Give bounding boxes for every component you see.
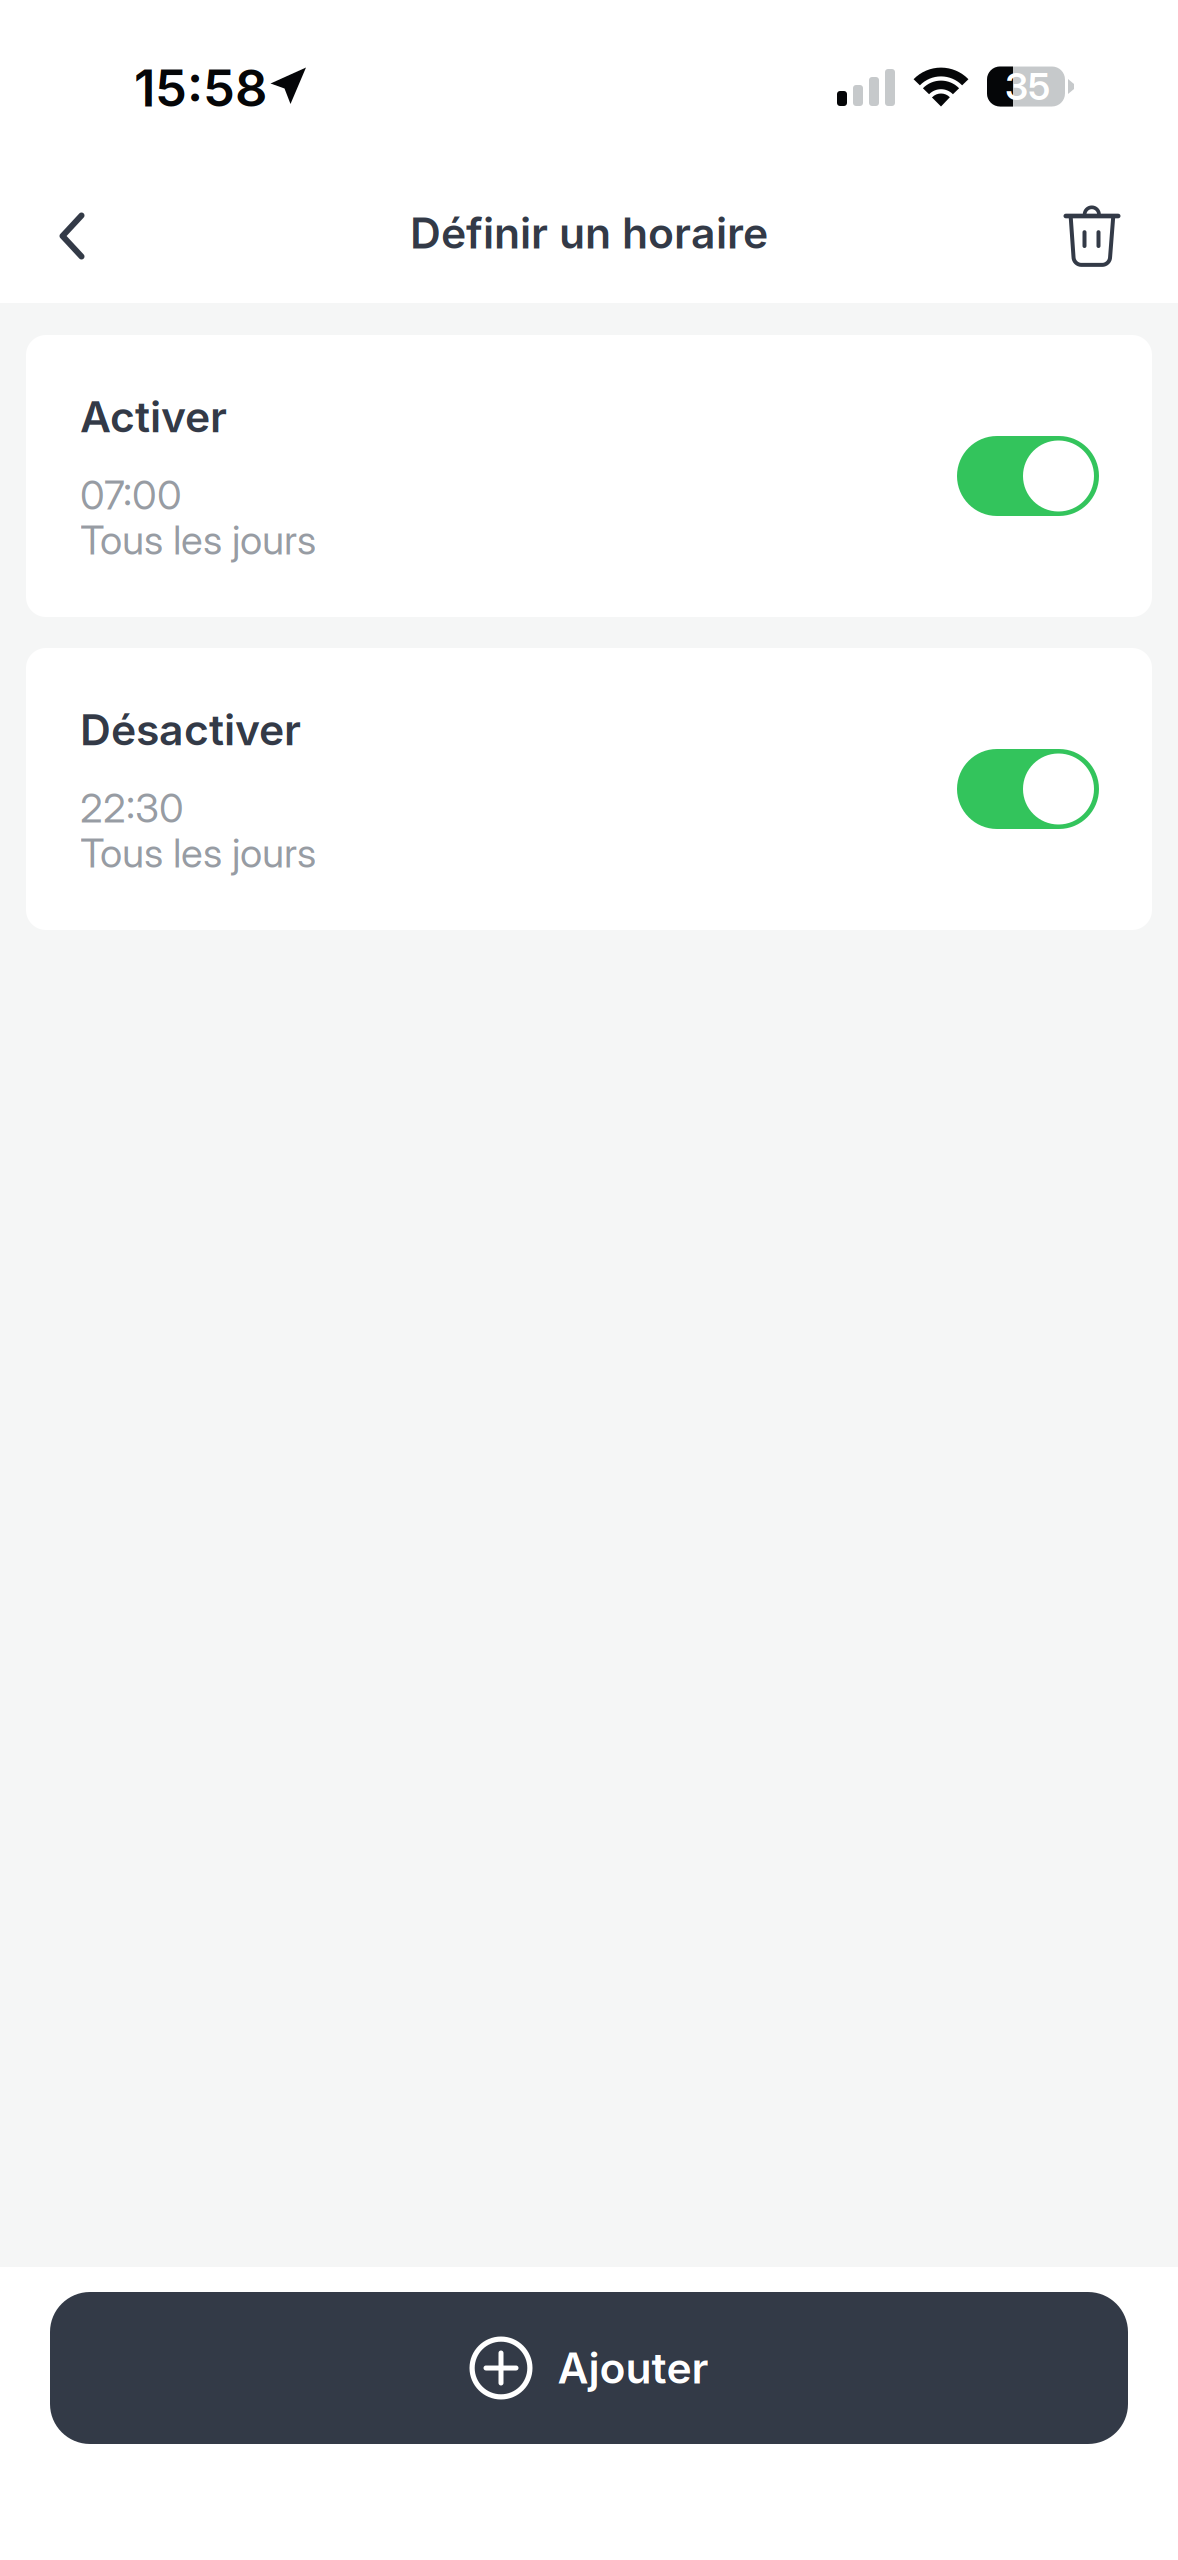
staticText: Désactiver xyxy=(80,704,301,756)
staticText: 15:58 xyxy=(134,57,267,119)
button[interactable]: Schedule enabled xyxy=(957,436,1099,516)
button[interactable]: Schedule enabled xyxy=(957,749,1099,829)
button[interactable]: Back xyxy=(24,185,120,281)
staticText: 35 xyxy=(1005,64,1050,109)
button[interactable]: Activer xyxy=(26,335,1152,617)
staticText: Tous les jours xyxy=(80,829,316,877)
staticText: 22:30 xyxy=(80,784,184,832)
staticText: Définir un horaire xyxy=(410,207,768,259)
button[interactable]: Désactiver xyxy=(26,648,1152,930)
button[interactable]: Ajouter xyxy=(50,2292,1128,2444)
staticText: 07:00 xyxy=(80,471,182,519)
staticText: Tous les jours xyxy=(80,516,316,564)
button[interactable]: Delete schedule xyxy=(1044,185,1140,281)
staticText: Activer xyxy=(80,391,227,443)
staticText: Ajouter xyxy=(557,2342,708,2394)
